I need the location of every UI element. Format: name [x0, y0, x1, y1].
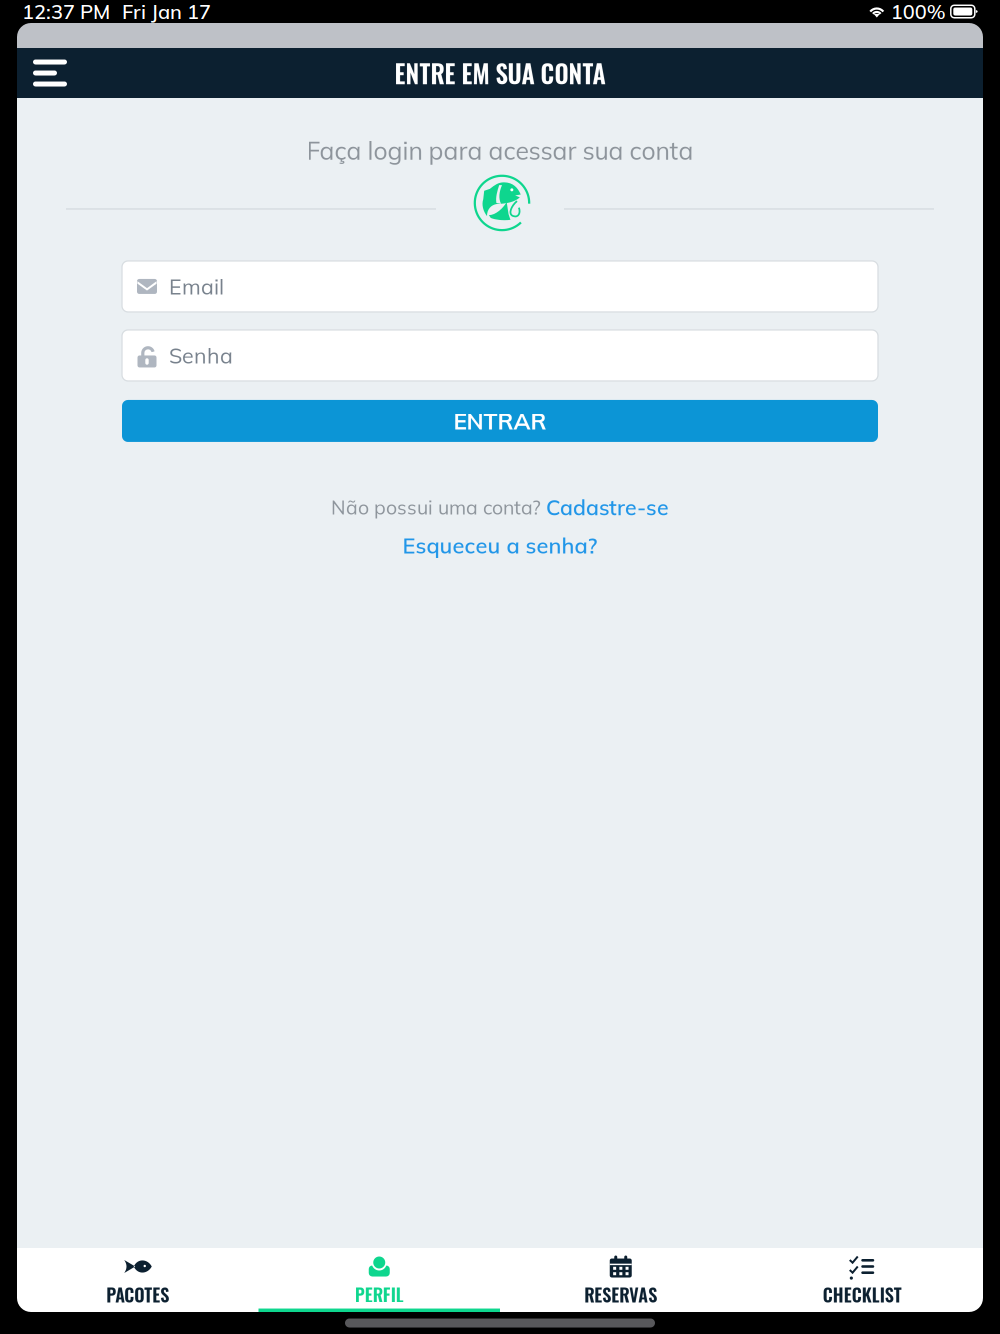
staticText: RESERVAS: [584, 1281, 657, 1308]
staticText: Não possui uma conta?: [331, 495, 546, 519]
button[interactable]: Cadastre-se: [546, 494, 669, 521]
staticText: PACOTES: [106, 1281, 169, 1308]
staticText: Senha: [169, 342, 233, 369]
button[interactable]: CHECKLIST: [741, 1248, 983, 1312]
button[interactable]: PACOTES: [17, 1248, 258, 1312]
button[interactable]: PERFIL: [258, 1248, 500, 1312]
staticText: ENTRE EM SUA CONTA: [394, 55, 605, 91]
button[interactable]: Senha: [122, 330, 878, 381]
button[interactable]: Email: [122, 261, 878, 312]
button[interactable]: RESERVAS: [500, 1248, 741, 1312]
staticText: ENTRAR: [453, 407, 546, 435]
staticText: 100%: [891, 0, 946, 24]
staticText: PERFIL: [355, 1281, 404, 1308]
button[interactable]: ENTRAR: [122, 400, 878, 442]
staticText: Cadastre-se: [546, 494, 669, 521]
staticText: 12:37 PM: [22, 0, 110, 24]
staticText: Esqueceu a senha?: [402, 532, 597, 559]
staticText: Email: [169, 273, 224, 300]
staticText: Fri Jan 17: [122, 0, 211, 24]
button[interactable]: Esqueceu a senha?: [402, 532, 597, 559]
button[interactable]: Menu: [17, 48, 83, 98]
staticText: CHECKLIST: [823, 1281, 902, 1308]
staticText: Faça login para acessar sua conta: [306, 135, 693, 166]
